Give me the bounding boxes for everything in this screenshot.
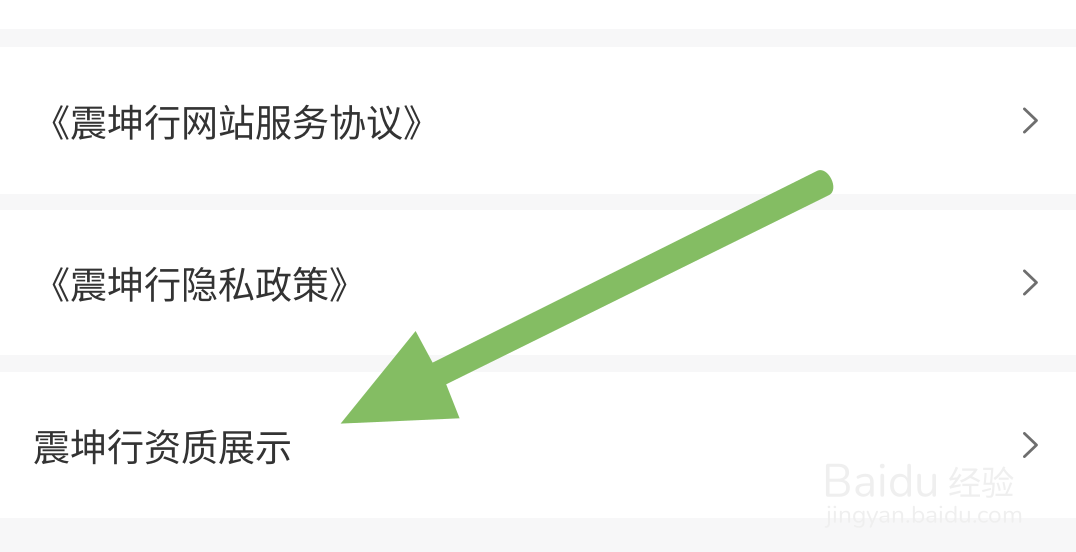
staticText: jingyan.baidu.com (826, 498, 1023, 531)
button[interactable]: 震坤行资质展示 (0, 372, 1076, 518)
button[interactable]: 《震坤行网站服务协议》 (0, 47, 1076, 194)
staticText: 《震坤行隐私政策》 (33, 256, 366, 309)
staticText: 《震坤行网站服务协议》 (33, 94, 440, 147)
staticText: 经验 (948, 456, 1014, 504)
staticText: 震坤行资质展示 (33, 418, 292, 472)
staticText: Baidu (822, 451, 939, 513)
button[interactable]: 《震坤行隐私政策》 (0, 210, 1076, 355)
